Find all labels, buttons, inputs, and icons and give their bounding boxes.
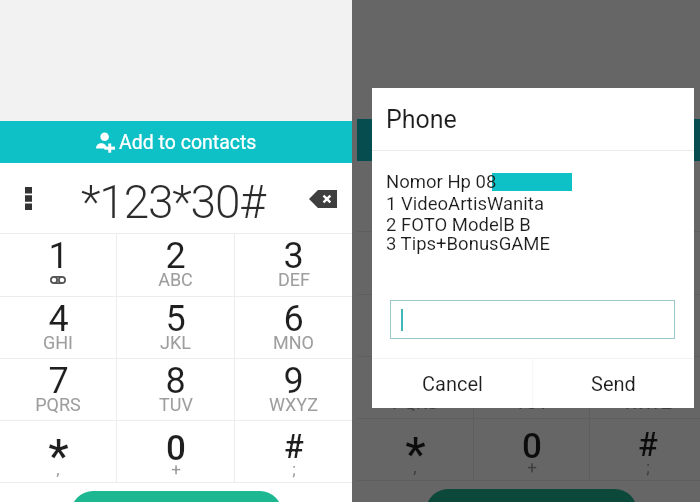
staticText: DEF	[278, 269, 310, 290]
staticText: 5	[165, 298, 186, 340]
button[interactable]: Add to contacts	[0, 121, 352, 163]
staticText: *123*30#	[438, 173, 622, 227]
staticText: 1	[48, 235, 69, 277]
staticText: +	[171, 459, 181, 479]
staticText: MNO	[273, 332, 314, 353]
staticText: 1	[405, 233, 426, 275]
staticText: Nomor Hp 08	[386, 171, 497, 193]
staticText: ABC	[158, 269, 193, 290]
staticText: 0	[522, 426, 542, 467]
staticText: *	[405, 427, 426, 481]
staticText: WXYZ	[269, 394, 318, 415]
button[interactable]: #	[590, 419, 700, 480]
staticText: Add to contacts	[474, 129, 612, 152]
staticText: ;	[292, 459, 296, 479]
staticText: JKL	[516, 330, 547, 351]
button[interactable]: 8	[117, 359, 234, 420]
staticText: 0	[166, 428, 186, 469]
staticText: ,	[413, 457, 417, 477]
button[interactable]: 0	[474, 419, 589, 480]
staticText: 7	[48, 360, 69, 402]
staticText: WXYZ	[623, 392, 672, 413]
staticText: MNO	[627, 330, 668, 351]
staticText: PQRS	[392, 392, 438, 413]
staticText: Cancel	[422, 372, 483, 395]
staticText: 2 FOTO ModelB B	[386, 214, 531, 236]
button[interactable]: *	[0, 421, 116, 482]
button[interactable]: 3	[590, 232, 700, 294]
staticText: ;	[646, 457, 650, 477]
staticText: #	[638, 425, 658, 464]
staticText: PQRS	[35, 394, 81, 415]
staticText: GHI	[43, 332, 73, 353]
staticText: 6	[637, 296, 658, 338]
staticText: 5	[521, 296, 542, 338]
button[interactable]: 8	[474, 357, 589, 418]
staticText: JKL	[160, 332, 191, 353]
button[interactable]: #	[235, 421, 352, 482]
button[interactable]: 6	[590, 295, 700, 356]
button[interactable]: 2	[474, 232, 589, 294]
button[interactable]: 4	[0, 297, 116, 358]
button[interactable]: 2	[117, 234, 234, 296]
staticText: TUV	[515, 392, 549, 413]
button[interactable]: Call	[71, 491, 282, 502]
button[interactable]: Backspace	[299, 163, 347, 233]
button[interactable]: 3	[235, 234, 352, 296]
staticText: 7	[405, 358, 426, 400]
button[interactable]: Send	[533, 359, 694, 408]
button[interactable]: Backspace	[656, 161, 700, 231]
button[interactable]: More options	[357, 161, 413, 231]
button[interactable]: Add to contacts	[357, 119, 700, 161]
staticText: ,	[56, 459, 60, 479]
staticText: 6	[283, 298, 304, 340]
staticText: Phone	[386, 105, 457, 134]
button[interactable]: More options	[0, 163, 56, 233]
staticText: GHI	[400, 330, 430, 351]
staticText: 2	[521, 233, 542, 275]
staticText: +	[527, 457, 537, 477]
staticText: 1 VideoArtisWanita	[386, 193, 544, 215]
button[interactable]: *	[357, 419, 473, 480]
button[interactable]	[390, 300, 675, 339]
button[interactable]: 9	[235, 359, 352, 420]
button[interactable]: Call	[426, 489, 637, 502]
button[interactable]: 0	[117, 421, 234, 482]
button[interactable]: 4	[357, 295, 473, 356]
button[interactable]: Cancel	[372, 359, 533, 408]
staticText: #	[284, 427, 304, 466]
button[interactable]: 9	[590, 357, 700, 418]
button[interactable]: 1	[357, 232, 473, 294]
button[interactable]: 1	[0, 234, 116, 296]
staticText: *	[48, 429, 69, 483]
staticText: 9	[283, 360, 304, 402]
staticText: 8	[165, 360, 186, 402]
staticText: Add to contacts	[119, 131, 257, 154]
button[interactable]: 5	[474, 295, 589, 356]
staticText: 2	[165, 235, 186, 277]
staticText: 3	[283, 235, 304, 277]
staticText: 4	[405, 296, 426, 338]
staticText: TUV	[159, 394, 193, 415]
staticText: 4	[48, 298, 69, 340]
button[interactable]: 6	[235, 297, 352, 358]
staticText: 3 Tips+BonusGAME	[386, 233, 550, 255]
staticText: Send	[591, 372, 636, 395]
button[interactable]: 7	[0, 359, 116, 420]
button[interactable]: 7	[357, 357, 473, 418]
staticText: *123*30#	[81, 175, 265, 229]
button[interactable]: 5	[117, 297, 234, 358]
